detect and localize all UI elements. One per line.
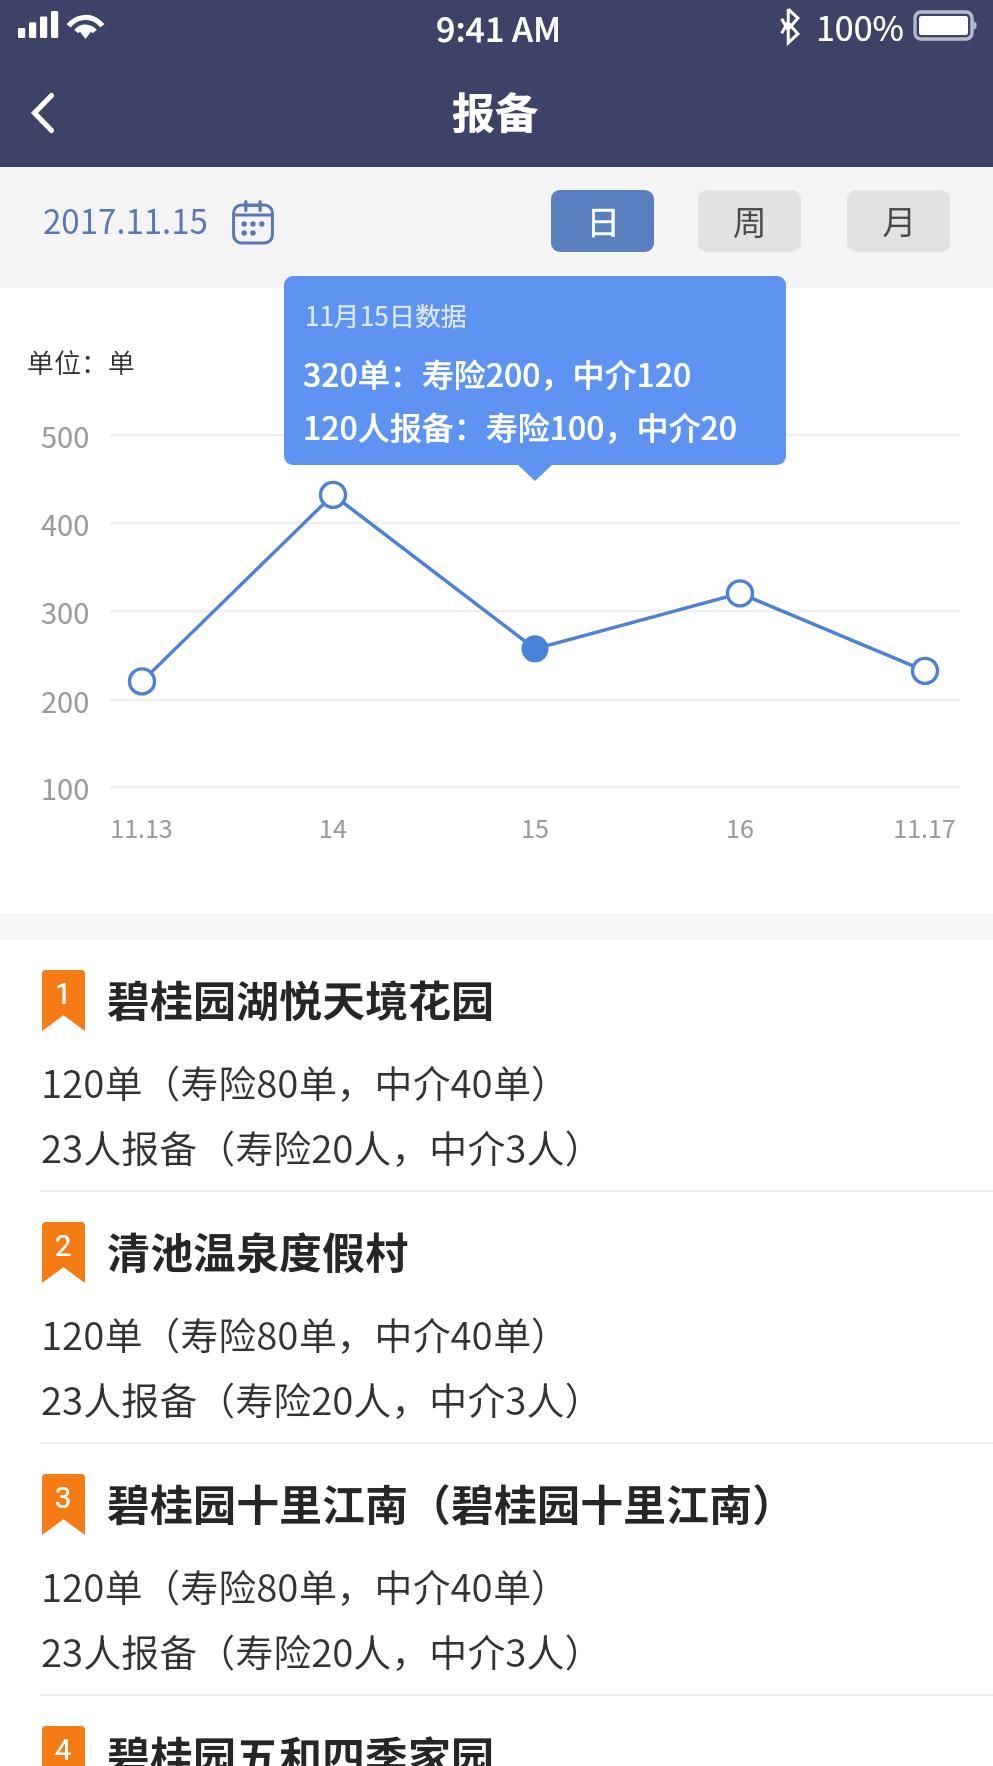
staticText: 碧桂园五和四季家园 (107, 1723, 494, 1766)
button[interactable]: 1 (0, 940, 993, 1190)
staticText: 120单（寿险80单，中介40单） (41, 1054, 569, 1109)
staticText: 周 (733, 196, 767, 245)
button[interactable]: 周 (698, 190, 801, 252)
staticText: 11月15日数据 (305, 296, 467, 334)
staticText: 500 (41, 414, 90, 456)
button[interactable]: 月 (847, 190, 950, 252)
staticText: 23人报备（寿险20人，中介3人） (41, 1119, 603, 1174)
button[interactable]: 2017.11.15 (36, 196, 276, 258)
staticText: 碧桂园湖悦天境花园 (107, 967, 494, 1029)
staticText: 2 (55, 1229, 72, 1263)
staticText: 300 (41, 590, 90, 632)
staticText: 100 (41, 766, 90, 808)
staticText: 1 (55, 977, 72, 1011)
staticText: 2017.11.15 (43, 196, 208, 244)
staticText: 碧桂园十里江南（碧桂园十里江南） (107, 1471, 795, 1533)
button[interactable]: Back (0, 59, 86, 167)
staticText: 月 (882, 196, 916, 245)
staticText: 单位：单 (27, 342, 135, 381)
staticText: 3 (55, 1481, 72, 1515)
staticText: 120单（寿险80单，中介40单） (41, 1306, 569, 1361)
staticText: 报备 (452, 79, 538, 141)
staticText: 15 (521, 809, 549, 845)
button[interactable]: 2 (0, 1192, 993, 1442)
staticText: 14 (319, 809, 347, 845)
staticText: 9:41 AM (436, 3, 562, 52)
staticText: 200 (41, 679, 90, 721)
staticText: 23人报备（寿险20人，中介3人） (41, 1371, 603, 1426)
staticText: 320单：寿险200，中介120 (303, 350, 692, 396)
button[interactable]: 3 (0, 1444, 993, 1694)
staticText: 23人报备（寿险20人，中介3人） (41, 1623, 603, 1678)
staticText: 清池温泉度假村 (107, 1219, 408, 1281)
button[interactable]: 日 (551, 190, 654, 252)
staticText: 100% (816, 2, 904, 51)
staticText: 日 (586, 196, 620, 245)
button[interactable]: 4 (0, 1696, 993, 1766)
staticText: 16 (726, 809, 754, 845)
staticText: 11.13 (110, 809, 173, 845)
staticText: 4 (55, 1733, 72, 1766)
staticText: 11.17 (893, 809, 956, 845)
staticText: 120人报备：寿险100，中介20 (303, 403, 737, 449)
staticText: 400 (41, 502, 90, 544)
staticText: 120单（寿险80单，中介40单） (41, 1558, 569, 1613)
